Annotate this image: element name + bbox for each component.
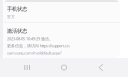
button[interactable]: Back	[86, 58, 116, 77]
staticText: 官方	[7, 15, 15, 19]
button[interactable]: Recents	[12, 58, 42, 77]
staticText: 2023-08-05 10:49:29 激活。	[7, 36, 53, 41]
button[interactable]: Home	[49, 58, 79, 77]
staticText: samsung.com/me/default.aspx?	[7, 50, 62, 56]
staticText: 手机状态	[7, 6, 27, 12]
staticText: 更多信息，请访问 https://support.cn.	[7, 43, 70, 48]
staticText: 激活状态	[7, 28, 27, 34]
